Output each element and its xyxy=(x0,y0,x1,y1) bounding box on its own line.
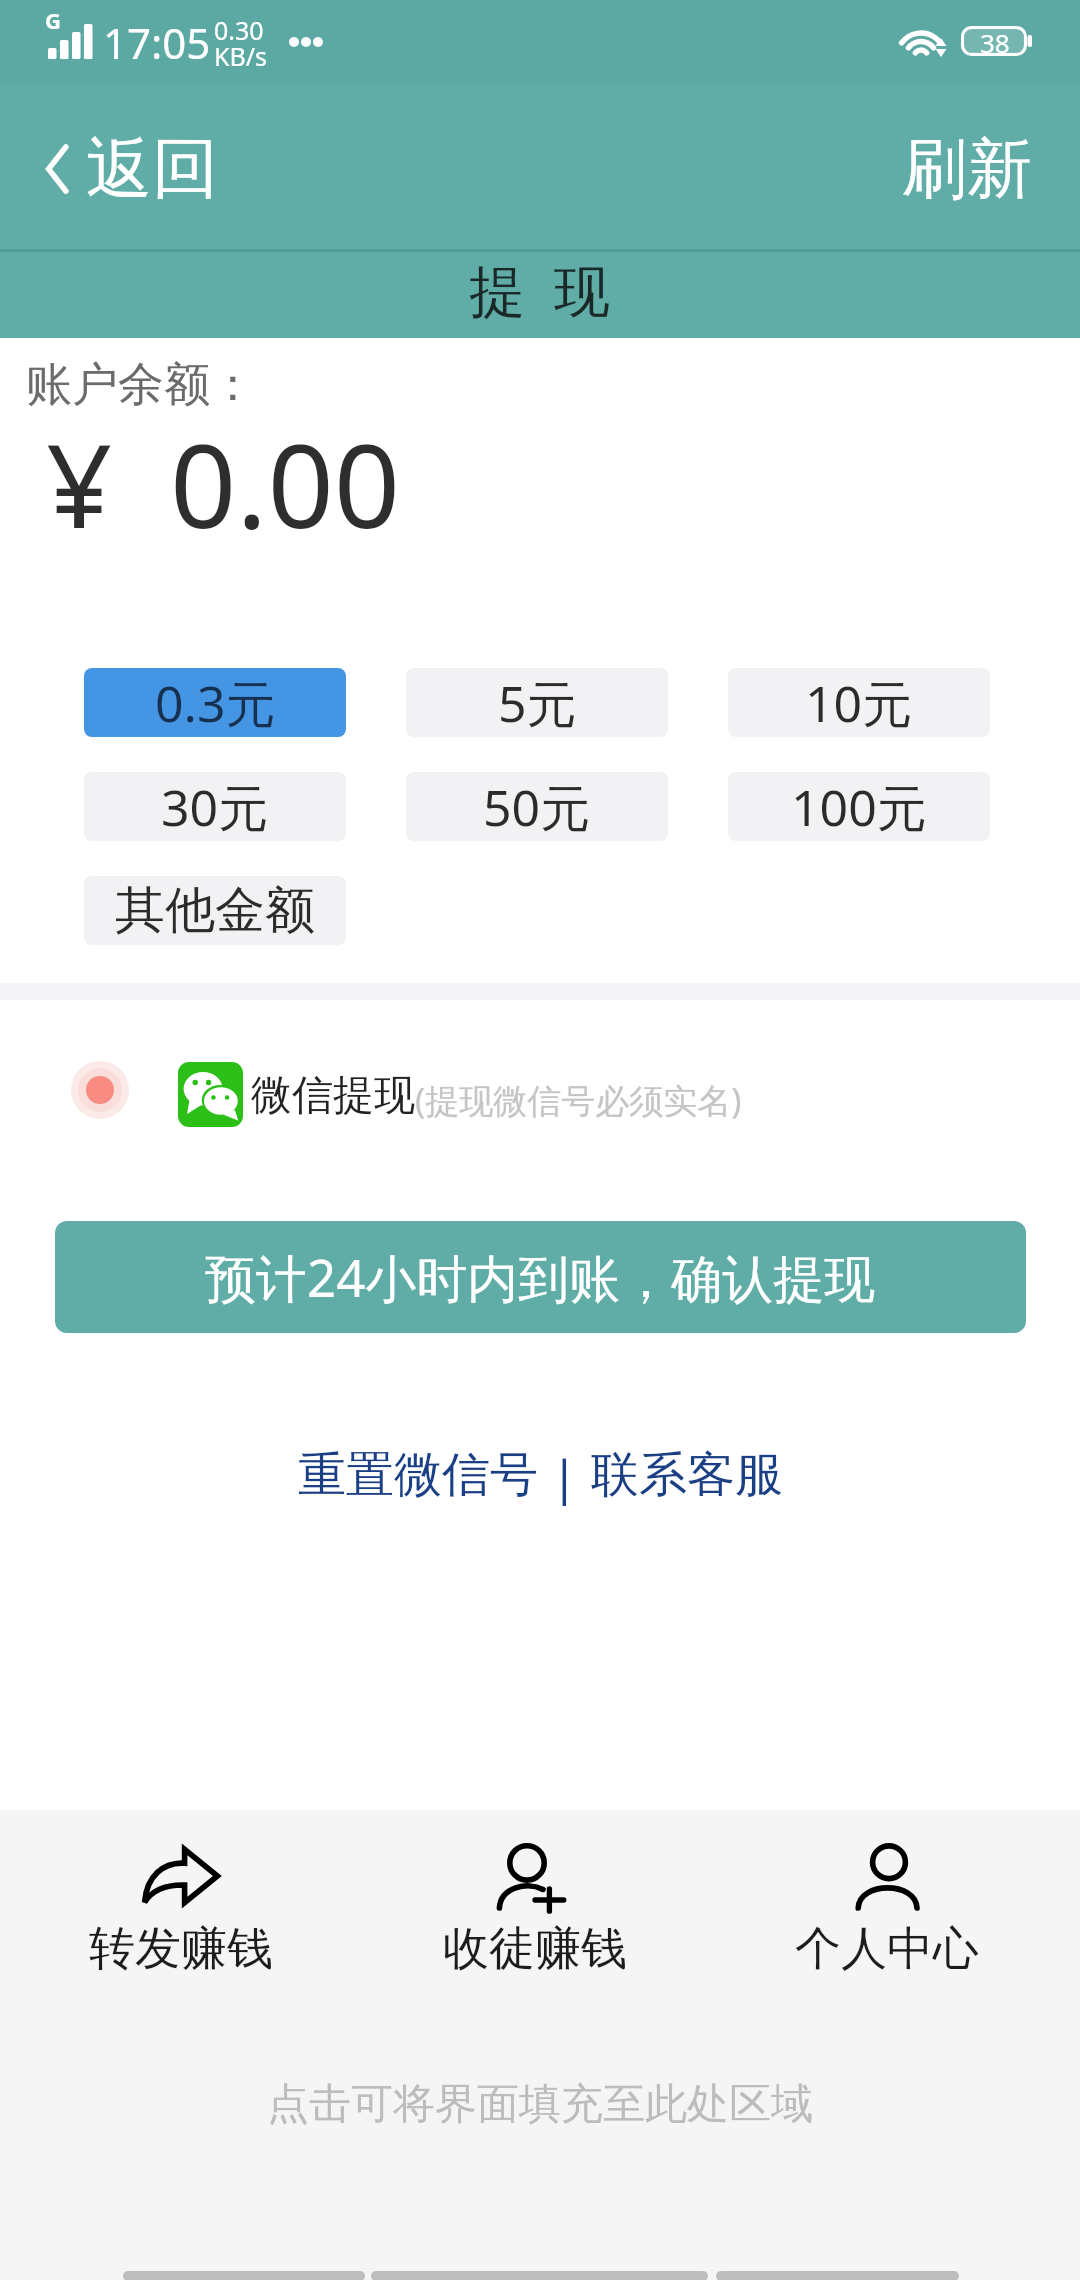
staticText: 100元 xyxy=(791,773,927,841)
button[interactable]: 100元 xyxy=(728,772,990,841)
button[interactable]: 预计24小时内到账，确认提现 xyxy=(55,1221,1026,1333)
button[interactable]: 刷新 xyxy=(902,128,1032,210)
button[interactable]: 其他金额 xyxy=(84,876,346,945)
staticText: 17:05 xyxy=(103,14,211,71)
staticText: 微信提现 xyxy=(251,1070,415,1122)
staticText: ¥ xyxy=(46,404,113,562)
button[interactable]: 联系客服 xyxy=(591,1444,783,1506)
staticText: 联系客服 xyxy=(591,1445,783,1505)
button[interactable]: 微信提现 xyxy=(0,1040,1080,1140)
button[interactable]: 50元 xyxy=(406,772,668,841)
button[interactable]: 0.3元 xyxy=(84,668,346,737)
staticText: | xyxy=(538,1444,591,1506)
staticText: 提 现 xyxy=(469,251,611,327)
staticText: 5元 xyxy=(498,669,577,737)
staticText: 转发赚钱 xyxy=(89,1920,273,1978)
staticText: 50元 xyxy=(483,773,591,841)
button[interactable]: 5元 xyxy=(406,668,668,737)
staticText: 账户余额： xyxy=(26,356,256,414)
staticText: (提现微信号必须实名) xyxy=(415,1077,742,1123)
staticText: 0.3元 xyxy=(155,669,276,737)
button[interactable]: 个人中心 xyxy=(757,1824,1017,1994)
button[interactable]: 重置微信号 xyxy=(298,1444,538,1506)
staticText: 其他金额 xyxy=(115,879,315,942)
staticText: 10元 xyxy=(805,669,913,737)
staticText: G xyxy=(45,5,61,35)
staticText: 预计24小时内到账，确认提现 xyxy=(205,1242,876,1312)
button[interactable]: 30元 xyxy=(84,772,346,841)
staticText: 返回 xyxy=(86,127,218,210)
staticText: 0.30 xyxy=(214,13,264,47)
button[interactable]: 收徒赚钱 xyxy=(405,1824,665,1994)
staticText: 刷新 xyxy=(902,128,1032,210)
staticText: 38 xyxy=(980,25,1010,55)
button[interactable]: 转发赚钱 xyxy=(51,1824,311,1994)
staticText: 重置微信号 xyxy=(298,1445,538,1505)
staticText: 收徒赚钱 xyxy=(443,1920,627,1978)
staticText: 个人中心 xyxy=(795,1920,979,1978)
staticText: 点击可将界面填充至此处区域 xyxy=(0,2078,1080,2131)
staticText: 30元 xyxy=(161,773,269,841)
button[interactable]: 10元 xyxy=(728,668,990,737)
staticText: KB/s xyxy=(214,39,268,73)
staticText: 0.00 xyxy=(170,404,401,562)
button[interactable]: 返回 xyxy=(42,127,218,210)
